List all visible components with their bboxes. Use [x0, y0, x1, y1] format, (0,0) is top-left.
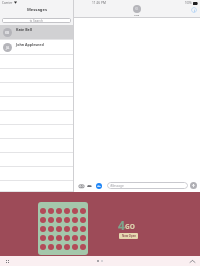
staticText: Now Open	[122, 234, 136, 238]
button[interactable]: Show controls	[189, 258, 195, 264]
staticText: Carrier	[2, 1, 13, 5]
button[interactable]: iMessage	[107, 182, 188, 189]
button[interactable]: App switcher	[4, 258, 10, 264]
staticText: KB	[135, 7, 139, 11]
staticText: i	[194, 8, 195, 13]
staticText: Kate Bell	[16, 27, 32, 32]
staticText: 11:26 PM	[92, 1, 106, 5]
staticText: Kate	[134, 13, 140, 16]
staticText: iMessage	[110, 184, 124, 188]
staticText: Messages	[27, 7, 47, 13]
button[interactable]: Camera	[78, 183, 84, 189]
button[interactable]: Send	[190, 182, 197, 189]
staticText: 4	[118, 217, 125, 233]
staticText: KB	[5, 30, 10, 35]
staticText: John Appleseed	[16, 42, 44, 47]
staticText: Search	[33, 19, 43, 23]
staticText: 100%	[185, 1, 192, 5]
button[interactable]: Now Open	[119, 233, 138, 239]
button[interactable]: JA	[0, 40, 73, 55]
staticText: GO	[125, 222, 135, 231]
button[interactable]: Details	[191, 7, 197, 13]
button[interactable]: KB	[0, 25, 73, 40]
staticText: JA	[6, 45, 10, 50]
button[interactable]: App Store	[86, 183, 92, 189]
button[interactable]: Search	[2, 18, 71, 23]
button[interactable]: Apps	[96, 183, 102, 189]
